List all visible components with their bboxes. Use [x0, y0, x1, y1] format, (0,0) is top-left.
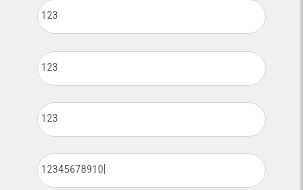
- staticText: 123: [41, 8, 59, 21]
- button[interactable]: 123: [37, 0, 266, 34]
- staticText: 12345678910: [41, 162, 104, 175]
- button[interactable]: 123: [37, 102, 266, 137]
- button[interactable]: 12345678910: [37, 153, 266, 188]
- button[interactable]: 123: [37, 51, 266, 86]
- staticText: 123: [41, 60, 59, 73]
- staticText: 123: [41, 111, 59, 124]
